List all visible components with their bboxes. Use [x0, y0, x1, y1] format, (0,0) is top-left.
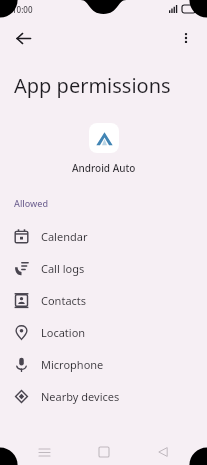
staticText: Calendar: [41, 229, 88, 244]
button[interactable]: More options: [170, 22, 202, 54]
button[interactable]: Calendar: [0, 220, 207, 252]
staticText: Android Auto: [72, 161, 136, 175]
button[interactable]: Back: [6, 21, 40, 55]
button[interactable]: Back: [148, 439, 178, 465]
button[interactable]: Call logs: [0, 252, 207, 284]
button[interactable]: Contacts: [0, 284, 207, 316]
button[interactable]: Location: [0, 316, 207, 348]
staticText: 10:00: [12, 4, 33, 15]
staticText: Microphone: [41, 357, 104, 372]
staticText: App permissions: [14, 72, 171, 99]
staticText: Contacts: [41, 293, 87, 308]
button[interactable]: Recent apps: [29, 439, 59, 465]
staticText: Allowed: [14, 197, 49, 209]
staticText: Nearby devices: [41, 389, 120, 404]
button[interactable]: Microphone: [0, 348, 207, 380]
button[interactable]: Home: [89, 439, 119, 465]
staticText: Location: [41, 325, 86, 340]
button[interactable]: Nearby devices: [0, 380, 207, 412]
staticText: Call logs: [41, 261, 85, 276]
